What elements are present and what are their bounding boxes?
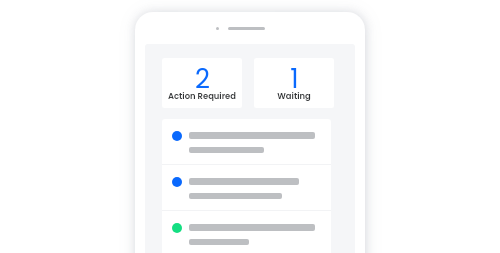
staticText: 1 bbox=[290, 61, 299, 97]
button[interactable]: 1 bbox=[254, 58, 334, 108]
button[interactable]: Task item, action required bbox=[162, 165, 331, 210]
staticText: Waiting bbox=[277, 90, 311, 102]
button[interactable]: Task item, completed bbox=[162, 211, 331, 253]
button[interactable]: Task item, action required bbox=[162, 119, 331, 164]
staticText: Action Required bbox=[168, 90, 236, 102]
button[interactable]: 2 bbox=[162, 58, 242, 108]
staticText: 2 bbox=[195, 61, 210, 97]
